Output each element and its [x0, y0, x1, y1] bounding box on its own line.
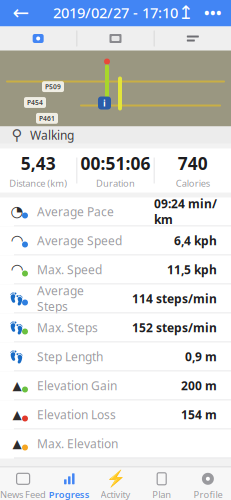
staticText: ⚡	[105, 470, 125, 488]
staticText: 154 m	[181, 406, 217, 422]
staticText: 👣	[9, 350, 24, 363]
staticText: •••	[204, 3, 222, 22]
button[interactable]: ◠	[0, 226, 231, 255]
button[interactable]: More options	[199, 0, 227, 26]
button[interactable]: Charts	[155, 26, 231, 50]
staticText: ◠	[11, 261, 22, 278]
staticText: News Feed	[0, 488, 46, 500]
button[interactable]: News Feed	[0, 467, 46, 500]
staticText: P461	[39, 114, 55, 123]
staticText: Distance (km)	[9, 177, 67, 189]
staticText: Duration	[96, 177, 135, 189]
staticText: 11,5 kph	[167, 261, 217, 277]
staticText: 09:24 min/km	[154, 196, 217, 227]
staticText: Activity	[100, 488, 130, 500]
staticText: Profile	[193, 488, 222, 500]
button[interactable]: ⚡	[92, 467, 139, 500]
button[interactable]: 👣	[0, 284, 231, 313]
button[interactable]: Back	[4, 0, 38, 26]
staticText: Elevation Loss	[37, 406, 116, 422]
staticText: 152 steps/min	[132, 319, 217, 335]
staticText: 👣	[9, 292, 24, 305]
button[interactable]: ▲	[0, 429, 231, 458]
button[interactable]: ◠	[0, 255, 231, 284]
button[interactable]: 👣	[0, 342, 231, 371]
button[interactable]: Map	[0, 26, 76, 50]
staticText: 5,43	[21, 152, 56, 175]
staticText: Elevation Gain	[37, 377, 117, 393]
staticText: Progress	[49, 488, 90, 500]
staticText: Plan	[152, 488, 171, 500]
button[interactable]: Progress	[46, 467, 92, 500]
staticText: Max. Steps	[37, 319, 98, 335]
staticText: i	[103, 97, 106, 109]
staticText: ▲	[12, 437, 21, 450]
button[interactable]: Photos	[77, 26, 154, 50]
staticText: Average Speed	[37, 232, 122, 248]
staticText: Average Pace	[37, 203, 114, 219]
staticText: ↥	[178, 2, 194, 23]
staticText: Calories	[176, 177, 210, 189]
staticText: Walking	[30, 127, 74, 143]
staticText: ◠	[11, 232, 22, 249]
button[interactable]: ▲	[0, 371, 231, 400]
staticText: P509	[45, 82, 61, 91]
staticText: 0,9 m	[185, 348, 217, 364]
staticText: 200 m	[181, 377, 217, 393]
staticText: ⚲	[11, 127, 22, 143]
staticText: ←	[12, 1, 29, 24]
staticText: ◔	[10, 203, 23, 220]
button[interactable]: Plan	[139, 467, 185, 500]
button[interactable]: 👣	[0, 313, 231, 342]
staticText: 740	[178, 152, 208, 175]
staticText: P454	[27, 98, 43, 107]
staticText: 6,4 kph	[174, 232, 217, 248]
button[interactable]: Profile	[185, 467, 231, 500]
staticText: Max. Elevation	[37, 435, 118, 451]
button[interactable]: Share	[173, 0, 199, 26]
staticText: Step Length	[37, 348, 103, 364]
staticText: ▲	[12, 379, 21, 392]
staticText: ▲	[12, 408, 21, 421]
staticText: Max. Speed	[37, 261, 102, 277]
button[interactable]: ▲	[0, 400, 231, 429]
staticText: 👣	[9, 321, 24, 334]
staticText: 2019/02/27 - 17:10	[53, 3, 178, 22]
button[interactable]: ◔	[0, 197, 231, 226]
staticText: Average Steps	[37, 283, 84, 314]
staticText: 00:51:06	[80, 152, 150, 175]
staticText: 114 steps/min	[132, 290, 217, 306]
